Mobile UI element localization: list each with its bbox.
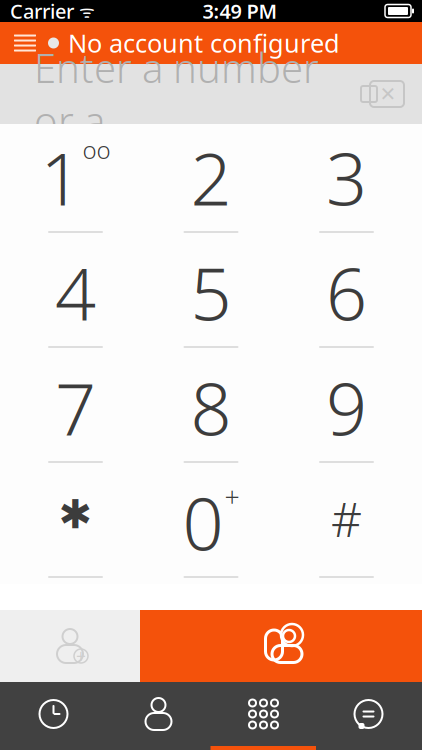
staticText: 6 — [326, 245, 367, 340]
button[interactable]: # — [286, 469, 406, 584]
button[interactable]: No account configured — [48, 22, 352, 64]
button[interactable]: 6 — [286, 239, 406, 354]
staticText: ✕ — [379, 83, 396, 105]
staticText: # — [331, 487, 362, 550]
staticText: Carrier — [10, 0, 74, 24]
button[interactable]: 0 — [151, 469, 271, 584]
staticText: ᯤ — [74, 0, 95, 22]
staticText: 1 — [40, 130, 81, 225]
button[interactable]: Add contact — [0, 610, 140, 682]
button[interactable]: 4 — [15, 239, 135, 354]
button[interactable]: Menu — [0, 22, 48, 64]
staticText: 8 — [190, 360, 231, 455]
staticText: 7 — [55, 360, 96, 455]
staticText: 2 — [190, 130, 231, 225]
staticText: Enter a number or a... — [34, 41, 319, 147]
staticText: No account configured — [68, 26, 340, 60]
button[interactable]: 8 — [151, 354, 271, 469]
button[interactable]: 1 — [15, 124, 135, 239]
button[interactable]: Messages — [316, 682, 421, 750]
button[interactable]: 3 — [286, 124, 406, 239]
staticText: 0 — [182, 475, 223, 570]
button[interactable]: Keypad — [211, 682, 316, 750]
staticText: 9 — [326, 360, 367, 455]
staticText: 4 — [55, 245, 96, 340]
staticText: ✱ — [58, 492, 92, 537]
staticText: + — [224, 479, 239, 514]
staticText: 3:49 PM — [202, 0, 277, 24]
staticText: 3 — [326, 130, 367, 225]
button[interactable]: ✱ — [15, 469, 135, 584]
button[interactable]: Recents — [1, 682, 106, 750]
button[interactable]: 9 — [286, 354, 406, 469]
button[interactable]: 7 — [15, 354, 135, 469]
button[interactable]: 5 — [151, 239, 271, 354]
staticText: + — [76, 644, 86, 667]
button[interactable]: Contacts — [106, 682, 211, 750]
button[interactable]: Call — [140, 610, 422, 682]
staticText: oo — [82, 134, 110, 166]
button[interactable]: 2 — [151, 124, 271, 239]
button[interactable]: Backspace — [358, 64, 422, 124]
staticText: 5 — [190, 245, 231, 340]
